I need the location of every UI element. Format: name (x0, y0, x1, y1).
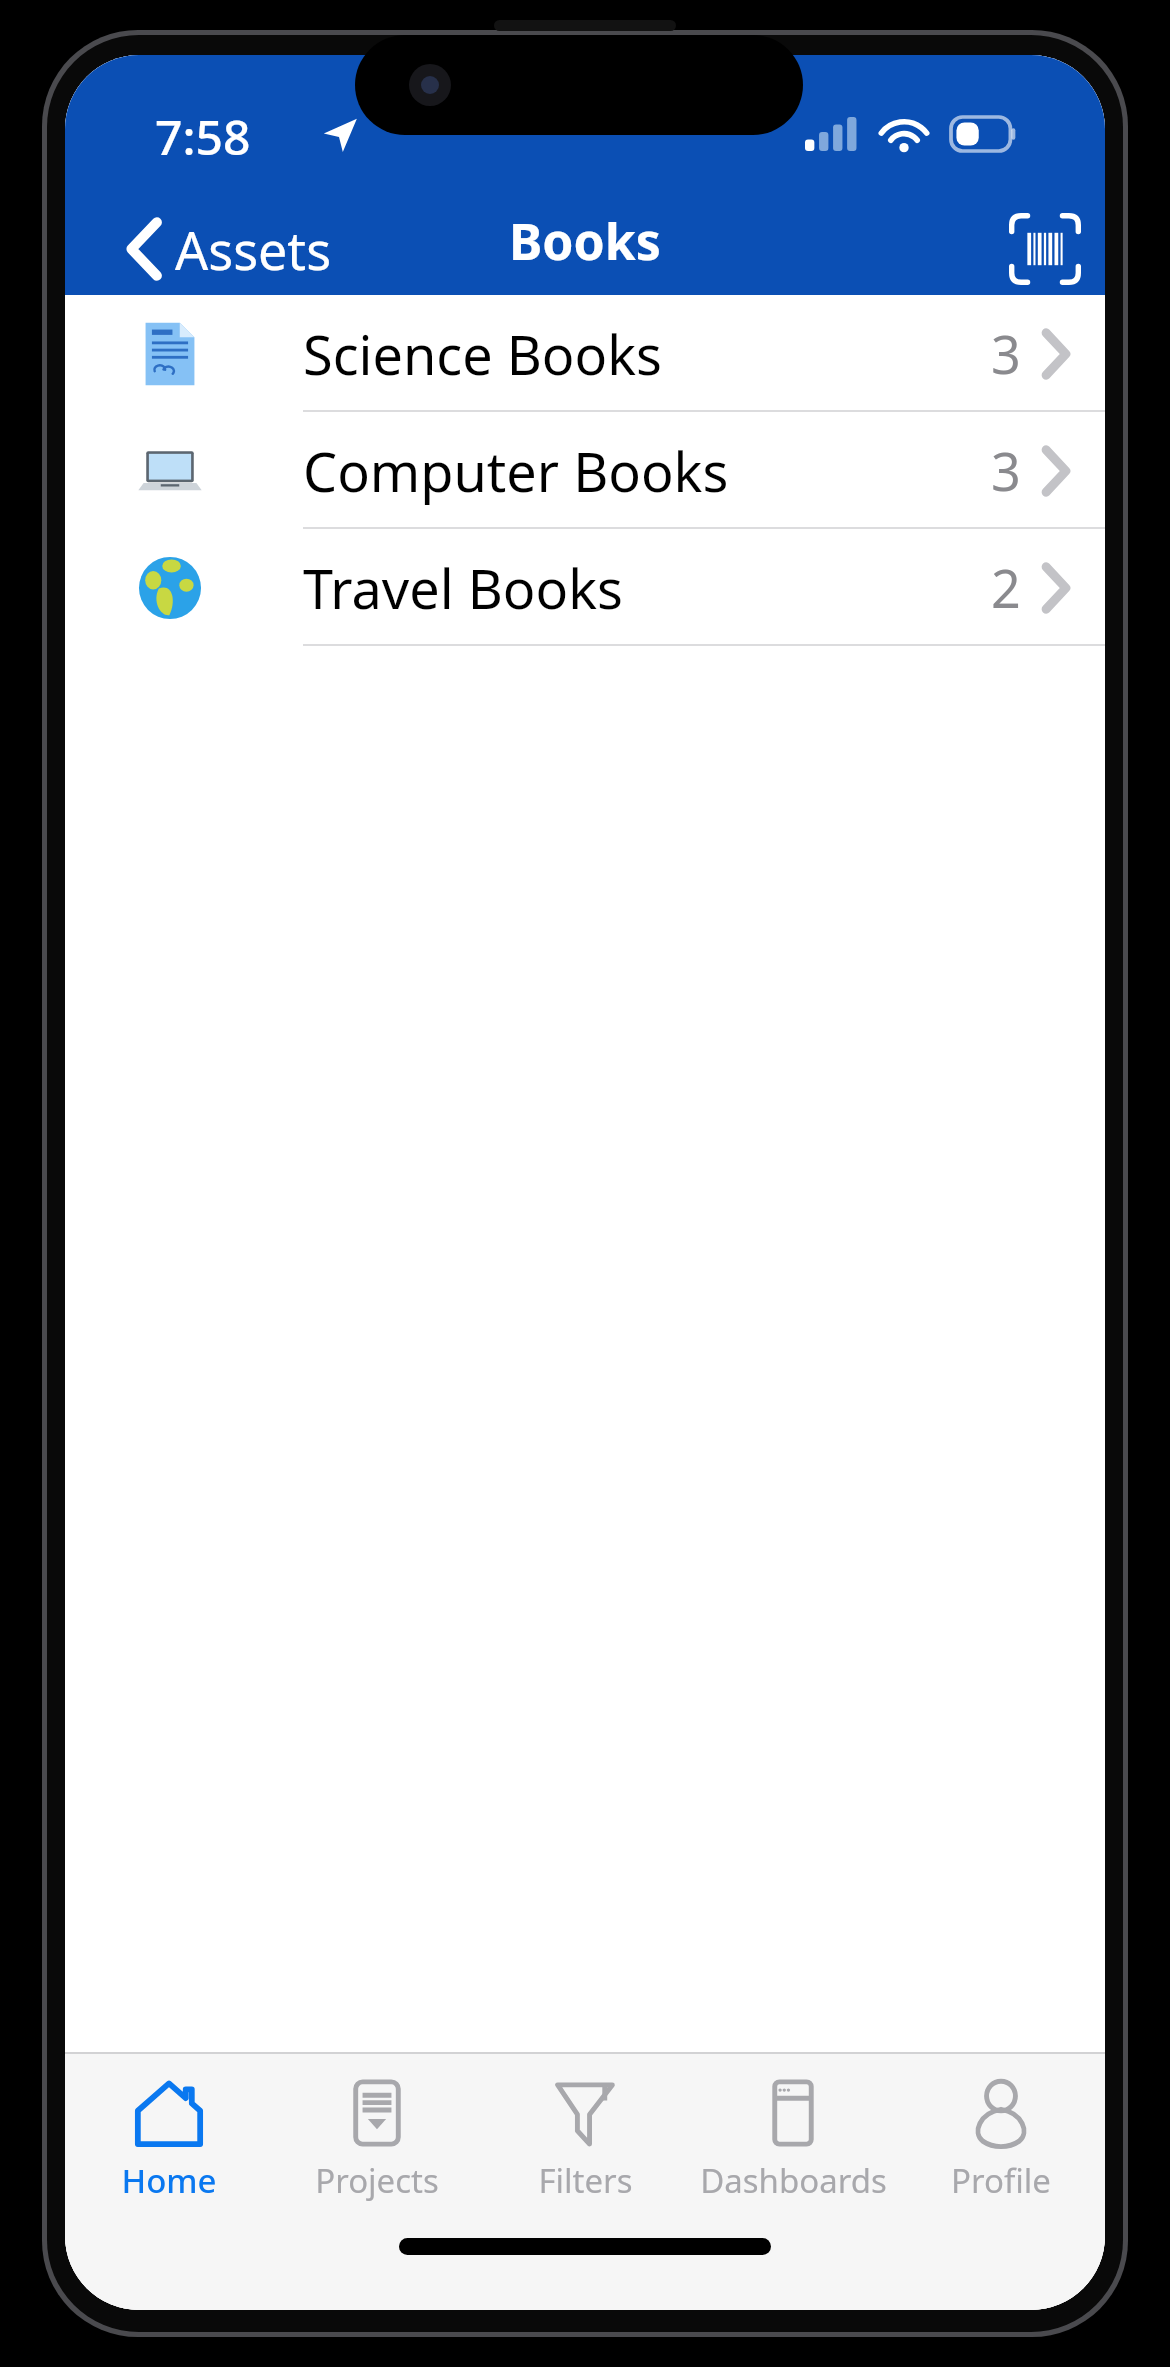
staticText: Dashboards (700, 2158, 887, 2203)
staticText: Science Books (303, 317, 662, 391)
staticText: 2 (991, 552, 1021, 623)
staticText: 7:58 (155, 104, 251, 169)
button[interactable]: Dashboards (689, 2054, 897, 2220)
button[interactable]: Scan barcode (985, 203, 1105, 295)
button[interactable]: Projects (273, 2054, 481, 2220)
staticText: 3 (991, 435, 1021, 506)
staticText: Projects (315, 2158, 439, 2203)
staticText: Books (509, 207, 661, 275)
staticText: Filters (538, 2158, 633, 2203)
staticText: Profile (951, 2158, 1051, 2203)
button[interactable]: Science Books (65, 295, 1105, 412)
button[interactable]: Computer Books (65, 412, 1105, 529)
staticText: Computer Books (303, 434, 729, 508)
button[interactable]: Profile (897, 2054, 1105, 2220)
staticText: Assets (175, 214, 332, 285)
button[interactable]: Assets (65, 203, 356, 295)
button[interactable]: Travel Books (65, 529, 1105, 646)
staticText: Home (121, 2158, 217, 2203)
button[interactable]: Filters (481, 2054, 689, 2220)
staticText: Travel Books (303, 551, 623, 625)
button[interactable]: Home (65, 2054, 273, 2220)
staticText: 3 (991, 318, 1021, 389)
